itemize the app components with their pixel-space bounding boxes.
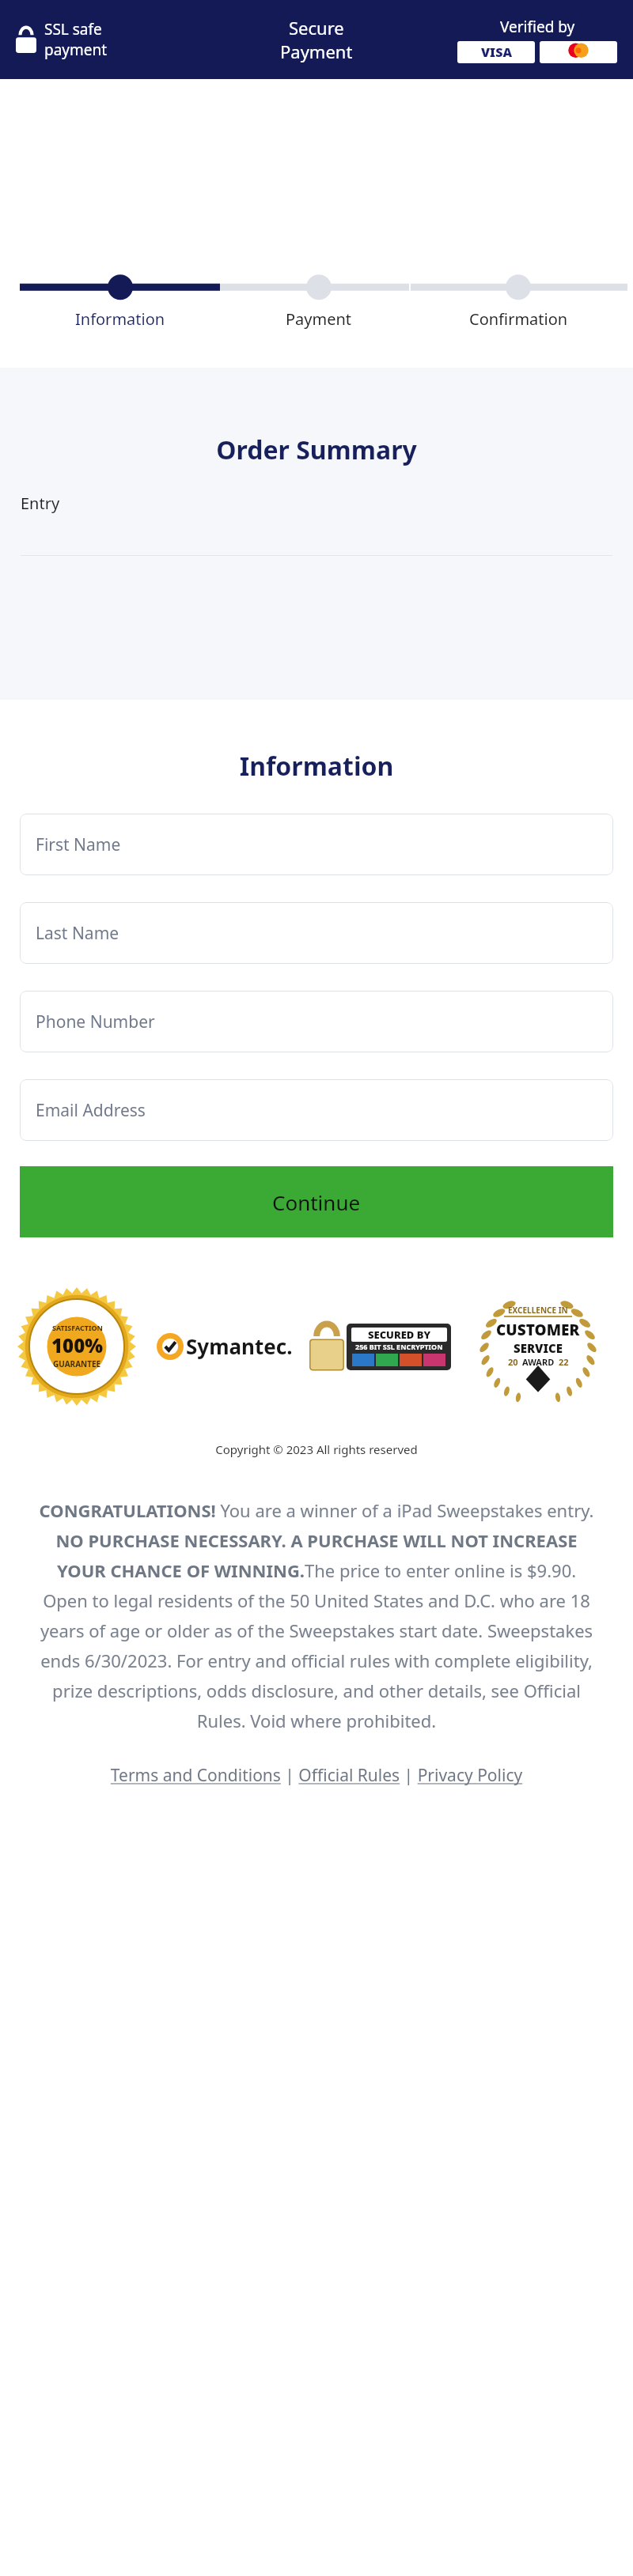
staticText: First Name	[36, 833, 121, 856]
staticText: SSL safe	[44, 19, 102, 40]
staticText: Payment	[286, 308, 352, 330]
button[interactable]: Information	[21, 308, 219, 330]
staticText: 100%	[51, 1332, 103, 1358]
staticText: 256 BIT SSL ENCRYPTION	[355, 1342, 443, 1351]
button[interactable]: Continue	[20, 1166, 613, 1237]
staticText: VISA	[481, 43, 512, 61]
staticText: Information	[75, 308, 165, 330]
staticText: Last Name	[36, 922, 119, 945]
button[interactable]: Confirmation	[419, 308, 617, 330]
staticText: Phone Number	[36, 1010, 155, 1033]
staticText: EXCELLENCE IN	[508, 1305, 568, 1316]
staticText: SECURED BY	[368, 1328, 431, 1342]
other: Secure lock	[16, 26, 36, 53]
staticText: Payment	[280, 40, 353, 63]
staticText: Email Address	[36, 1099, 146, 1122]
staticText: Symantec.	[186, 1332, 293, 1360]
staticText: Information	[0, 749, 633, 784]
staticText: CUSTOMER	[496, 1320, 580, 1340]
staticText: payment	[44, 40, 108, 60]
staticText: GUARANTEE	[53, 1358, 101, 1369]
button[interactable]: Terms and Conditions | Official Rules | …	[32, 1764, 601, 1787]
staticText: Terms and Conditions | Official Rules | …	[32, 1764, 601, 1787]
staticText: SATISFACTION	[52, 1323, 103, 1332]
button[interactable]: Phone Number	[20, 991, 613, 1052]
staticText: 20	[508, 1356, 518, 1368]
staticText: 22	[559, 1356, 569, 1368]
staticText: Order Summary	[0, 432, 633, 467]
staticText: Copyright © 2023 All rights reserved	[0, 1441, 633, 1457]
button[interactable]: Last Name	[20, 902, 613, 964]
button[interactable]: First Name	[20, 814, 613, 875]
staticText: SERVICE	[514, 1340, 563, 1356]
staticText: Continue	[272, 1188, 361, 1216]
staticText: Secure	[289, 16, 344, 40]
button[interactable]: Email Address	[20, 1079, 613, 1141]
staticText: AWARD	[522, 1356, 555, 1368]
staticText: CONGRATULATIONS! You are a winner of a i…	[33, 1498, 600, 1732]
staticText: Entry	[21, 493, 60, 514]
staticText: Verified by	[500, 17, 575, 37]
staticText: Confirmation	[469, 308, 568, 330]
button[interactable]: Payment	[220, 308, 418, 330]
